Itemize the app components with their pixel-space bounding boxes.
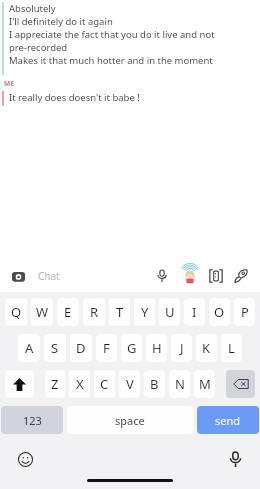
staticText: O — [214, 303, 225, 321]
button[interactable]: K — [196, 334, 217, 362]
staticText: space — [115, 413, 145, 428]
button[interactable]: T — [109, 298, 130, 326]
button[interactable]: V — [119, 370, 140, 398]
staticText: V — [126, 375, 134, 393]
staticText: Absolutely — [9, 2, 56, 15]
staticText: 123 — [23, 413, 42, 428]
staticText: N — [175, 375, 185, 393]
button[interactable]: Q — [5, 298, 27, 326]
staticText: X — [76, 375, 84, 393]
button[interactable]: N — [169, 370, 190, 398]
button[interactable]: R — [83, 298, 105, 326]
staticText: J — [180, 339, 184, 357]
button[interactable]: Stickers — [205, 265, 227, 287]
staticText: I appreciate the fact that you do it liv… — [9, 28, 215, 41]
button[interactable]: Chat — [38, 260, 151, 292]
staticText: send — [215, 413, 241, 428]
staticText: I — [192, 303, 197, 321]
button[interactable]: J — [171, 334, 192, 362]
button[interactable]: I — [184, 298, 205, 326]
button[interactable]: C — [94, 370, 115, 398]
button[interactable]: W — [31, 298, 53, 326]
button[interactable]: O — [209, 298, 230, 326]
staticText: D — [76, 339, 86, 357]
staticText: pre-recorded — [9, 41, 68, 54]
staticText: G — [127, 339, 137, 357]
button[interactable]: H — [146, 334, 167, 362]
button[interactable]: send — [197, 406, 259, 434]
button[interactable]: Camera — [8, 266, 28, 286]
button[interactable]: U — [159, 298, 180, 326]
button[interactable]: M — [194, 370, 215, 398]
staticText: E — [64, 303, 72, 321]
button[interactable]: Rocket — [230, 265, 252, 287]
button[interactable]: Dictate — [224, 448, 246, 470]
staticText: It really does doesn't it babe ! — [9, 91, 140, 104]
button[interactable]: L — [221, 334, 242, 362]
button[interactable]: Voice note — [151, 265, 173, 287]
button[interactable]: Bitmoji sticker — [178, 264, 202, 288]
button[interactable]: S — [44, 334, 66, 362]
staticText: B — [150, 375, 159, 393]
button[interactable]: X — [69, 370, 90, 398]
button[interactable]: Emoji — [14, 448, 36, 470]
staticText: R — [90, 303, 99, 321]
button[interactable]: B — [144, 370, 165, 398]
staticText: U — [165, 303, 175, 321]
button[interactable]: D — [70, 334, 92, 362]
button[interactable]: Shift — [5, 370, 34, 398]
staticText: I'll definitely do it again — [9, 15, 113, 28]
button[interactable]: space — [67, 406, 193, 434]
staticText: P — [241, 303, 249, 321]
button[interactable]: Backspace — [226, 370, 255, 398]
button[interactable]: Z — [45, 370, 65, 398]
staticText: Q — [11, 303, 22, 321]
staticText: F — [103, 339, 110, 357]
staticText: K — [202, 339, 211, 357]
button[interactable]: 123 — [1, 406, 63, 434]
staticText: Makes it that much hotter and in the mom… — [9, 54, 213, 67]
button[interactable]: A — [18, 334, 40, 362]
staticText: W — [36, 303, 49, 321]
staticText: H — [152, 339, 162, 357]
staticText: S — [51, 339, 59, 357]
button[interactable]: F — [96, 334, 117, 362]
staticText: Y — [141, 303, 149, 321]
button[interactable]: P — [234, 298, 255, 326]
button[interactable]: E — [57, 298, 79, 326]
staticText: Chat — [38, 269, 60, 283]
staticText: T — [116, 303, 124, 321]
button[interactable]: Y — [134, 298, 155, 326]
staticText: L — [228, 339, 235, 357]
staticText: Z — [51, 375, 59, 393]
staticText: A — [25, 339, 34, 357]
staticText: C — [100, 375, 109, 393]
button[interactable]: G — [121, 334, 142, 362]
staticText: ME — [4, 79, 15, 88]
staticText: M — [199, 375, 211, 393]
